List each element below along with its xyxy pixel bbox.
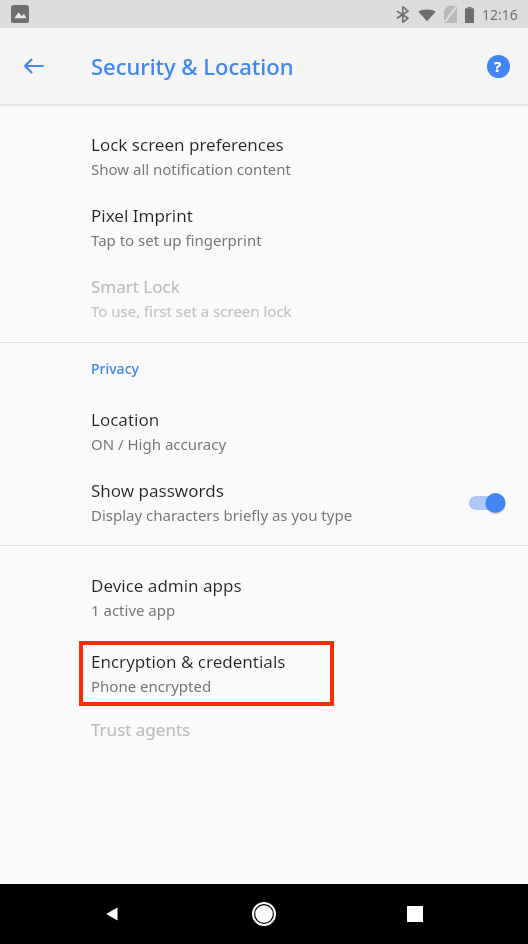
staticText: Device admin apps [91, 574, 242, 597]
button[interactable]: Pixel Imprint [0, 192, 528, 263]
button[interactable]: Back [91, 892, 135, 936]
staticText: Show passwords [91, 479, 224, 502]
staticText: Encryption & credentials [91, 650, 286, 673]
button[interactable]: Location [0, 396, 528, 467]
button[interactable]: Encryption & credentials [79, 641, 334, 706]
staticText: To use, first set a screen lock [91, 301, 292, 321]
staticText: Show all notification content [91, 159, 291, 179]
staticText: Lock screen preferences [91, 133, 284, 156]
staticText: Tap to set up fingerprint [91, 230, 262, 250]
staticText: Privacy [91, 359, 139, 378]
button[interactable]: Show passwords [0, 467, 528, 538]
button[interactable]: Help [474, 42, 522, 90]
button[interactable]: Lock screen preferences [0, 121, 528, 192]
staticText: Pixel Imprint [91, 204, 193, 227]
button[interactable]: Recent apps [393, 892, 437, 936]
staticText: Smart Lock [91, 275, 180, 298]
button[interactable]: Trust agents [0, 706, 528, 754]
button[interactable]: Show passwords toggle [460, 486, 512, 520]
button[interactable]: Device admin apps [0, 562, 528, 633]
staticText: 12:16 [482, 5, 518, 24]
staticText: Phone encrypted [91, 676, 212, 696]
button[interactable]: Smart Lock [0, 263, 528, 334]
button[interactable]: Back [10, 42, 58, 90]
staticText: Location [91, 408, 160, 431]
button[interactable]: Home [242, 892, 286, 936]
staticText: 1 active app [91, 600, 176, 620]
staticText: ON / High accuracy [91, 434, 227, 454]
staticText: Trust agents [91, 718, 191, 741]
staticText: Security & Location [91, 51, 294, 81]
staticText: ? [494, 56, 502, 76]
staticText: Display characters briefly as you type [91, 505, 353, 525]
